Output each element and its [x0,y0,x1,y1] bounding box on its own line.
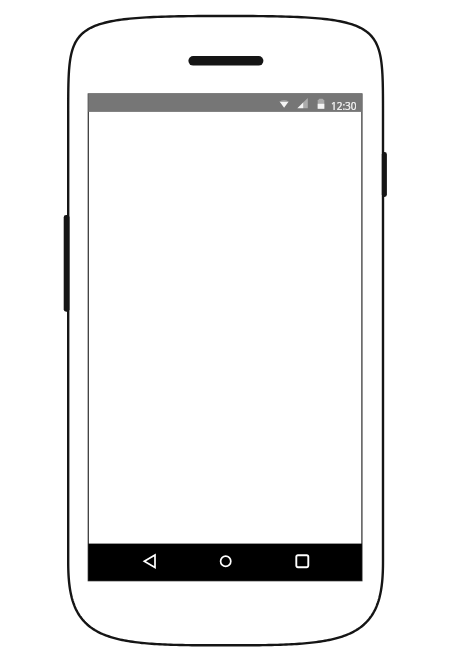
button[interactable]: Recent apps [271,544,362,581]
button[interactable]: Back [88,544,180,581]
button[interactable]: Home [180,544,271,581]
staticText: 12:30 [331,99,357,113]
button[interactable]: Power [380,151,389,198]
button[interactable]: App content [88,112,362,544]
button[interactable]: Volume [62,214,71,313]
button[interactable]: Status bar, 12:30 [88,94,362,112]
